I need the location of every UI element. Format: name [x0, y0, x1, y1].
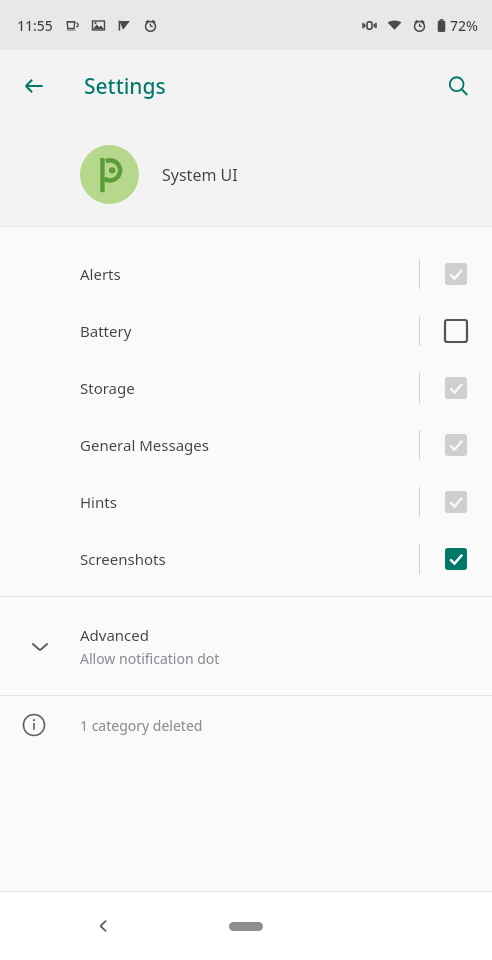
- staticText: 11:55: [17, 16, 53, 35]
- button[interactable]: Hints: [0, 473, 492, 530]
- button[interactable]: 1 category deleted: [0, 696, 492, 754]
- button[interactable]: [420, 245, 492, 302]
- button[interactable]: [420, 359, 492, 416]
- staticText: Screenshots: [80, 549, 419, 569]
- button[interactable]: Battery: [0, 302, 492, 359]
- button[interactable]: [420, 302, 492, 359]
- button[interactable]: General Messages: [0, 416, 492, 473]
- staticText: Battery: [80, 321, 419, 341]
- staticText: Settings: [84, 72, 166, 101]
- staticText: Allow notification dot: [80, 649, 220, 668]
- staticText: Storage: [80, 378, 419, 398]
- staticText: System UI: [162, 164, 238, 186]
- staticText: 1 category deleted: [80, 716, 203, 735]
- staticText: General Messages: [80, 435, 419, 455]
- button[interactable]: Screenshots: [0, 530, 492, 587]
- button[interactable]: [420, 416, 492, 473]
- staticText: Hints: [80, 492, 419, 512]
- staticText: Alerts: [80, 264, 419, 284]
- button[interactable]: [420, 530, 492, 587]
- button[interactable]: Search: [434, 62, 482, 110]
- button[interactable]: Back: [82, 904, 126, 948]
- button[interactable]: Storage: [0, 359, 492, 416]
- button[interactable]: Back: [10, 62, 58, 110]
- button[interactable]: Advanced: [0, 597, 492, 695]
- button[interactable]: [420, 473, 492, 530]
- staticText: Advanced: [80, 625, 150, 645]
- button[interactable]: Alerts: [0, 245, 492, 302]
- button[interactable]: Home: [215, 905, 277, 947]
- staticText: 72%: [450, 16, 478, 35]
